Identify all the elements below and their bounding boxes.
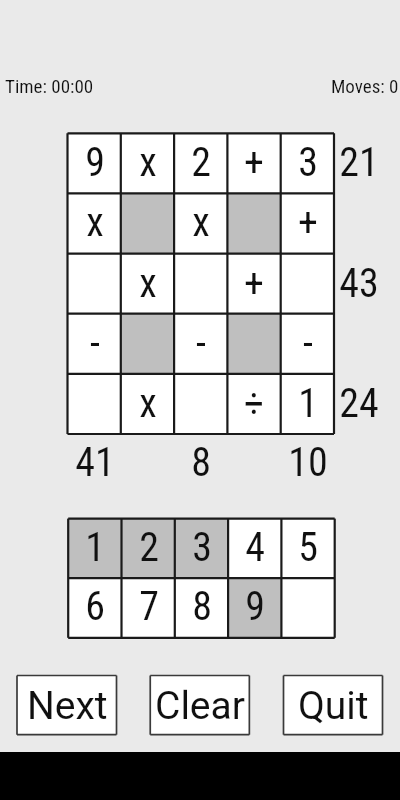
staticText: 9 xyxy=(85,139,105,186)
staticText: 3 xyxy=(192,524,212,571)
staticText: - xyxy=(90,320,100,367)
button[interactable]: Digit 1 xyxy=(68,519,121,579)
staticText: Next xyxy=(27,683,108,729)
button[interactable]: Cell row 1 column 4, + xyxy=(227,133,280,193)
staticText: ÷ xyxy=(244,380,264,427)
button[interactable]: Clear xyxy=(150,676,249,735)
staticText: 21 xyxy=(339,139,379,186)
button[interactable]: Cell row 4 column 3, - xyxy=(174,314,227,374)
button[interactable]: Quit xyxy=(284,676,383,735)
staticText: 10 xyxy=(288,439,328,486)
staticText: x xyxy=(139,139,157,186)
staticText: Quit xyxy=(298,683,369,729)
staticText: x xyxy=(86,199,104,246)
staticText: 5 xyxy=(298,524,318,571)
button[interactable]: Digit 6 xyxy=(68,578,121,638)
button[interactable]: Cell row 1 column 3, 2 xyxy=(174,133,227,193)
staticText: 1 xyxy=(298,380,318,427)
button[interactable]: Empty cell row 5 column 1 xyxy=(68,374,121,434)
button[interactable]: Empty cell row 4 column 4 xyxy=(227,314,280,374)
button[interactable]: Next xyxy=(17,676,117,735)
button[interactable]: Cell row 5 column 2, x xyxy=(121,374,174,434)
staticText: x xyxy=(192,199,210,246)
button[interactable]: Cell row 5 column 5, 1 xyxy=(281,374,334,434)
button[interactable]: Digit 7 xyxy=(122,578,175,638)
button[interactable]: Empty cell row 3 column 3 xyxy=(174,254,227,314)
staticText: Time: 00:00 xyxy=(5,75,94,97)
button[interactable]: Empty cell row 3 column 1 xyxy=(68,254,121,314)
staticText: 8 xyxy=(192,583,212,630)
staticText: Moves: 0 xyxy=(331,75,399,97)
button[interactable]: Cell row 4 column 5, - xyxy=(281,314,334,374)
staticText: + xyxy=(244,260,264,307)
staticText: 2 xyxy=(139,524,159,571)
staticText: - xyxy=(303,320,313,367)
staticText: x xyxy=(139,380,157,427)
staticText: 4 xyxy=(245,524,265,571)
button[interactable]: Cell row 4 column 1, - xyxy=(68,314,121,374)
staticText: 2 xyxy=(191,139,211,186)
staticText: 41 xyxy=(75,439,115,486)
staticText: 6 xyxy=(85,583,105,630)
staticText: 9 xyxy=(245,583,265,630)
staticText: Clear xyxy=(155,683,245,729)
button[interactable]: Blank key xyxy=(281,578,334,638)
staticText: 8 xyxy=(191,439,211,486)
button[interactable]: Cell row 2 column 3, x xyxy=(174,193,227,253)
staticText: 1 xyxy=(85,524,105,571)
button[interactable]: Cell row 5 column 4, ÷ xyxy=(227,374,280,434)
button[interactable]: Empty cell row 2 column 2 xyxy=(121,193,174,253)
button[interactable]: Empty cell row 2 column 4 xyxy=(227,193,280,253)
button[interactable]: Digit 2 xyxy=(122,519,175,579)
button[interactable]: Digit 9 xyxy=(228,578,281,638)
button[interactable]: Cell row 3 column 2, x xyxy=(121,254,174,314)
button[interactable]: Cell row 2 column 5, + xyxy=(281,193,334,253)
button[interactable]: Empty cell row 3 column 5 xyxy=(281,254,334,314)
button[interactable]: Cell row 1 column 2, x xyxy=(121,133,174,193)
staticText: - xyxy=(196,320,206,367)
button[interactable]: Cell row 1 column 5, 3 xyxy=(281,133,334,193)
button[interactable]: Empty cell row 4 column 2 xyxy=(121,314,174,374)
button[interactable]: Digit 3 xyxy=(175,519,228,579)
staticText: 7 xyxy=(139,583,159,630)
button[interactable]: Cell row 3 column 4, + xyxy=(227,254,280,314)
button[interactable]: Empty cell row 5 column 3 xyxy=(174,374,227,434)
staticText: + xyxy=(298,199,318,246)
button[interactable]: Cell row 2 column 1, x xyxy=(68,193,121,253)
button[interactable]: Digit 5 xyxy=(281,519,334,579)
button[interactable]: Digit 4 xyxy=(228,519,281,579)
staticText: 3 xyxy=(298,139,318,186)
staticText: x xyxy=(139,260,157,307)
staticText: 24 xyxy=(339,380,379,427)
button[interactable]: Cell row 1 column 1, 9 xyxy=(68,133,121,193)
staticText: + xyxy=(244,139,264,186)
staticText: 43 xyxy=(339,260,379,307)
button[interactable]: Digit 8 xyxy=(175,578,228,638)
